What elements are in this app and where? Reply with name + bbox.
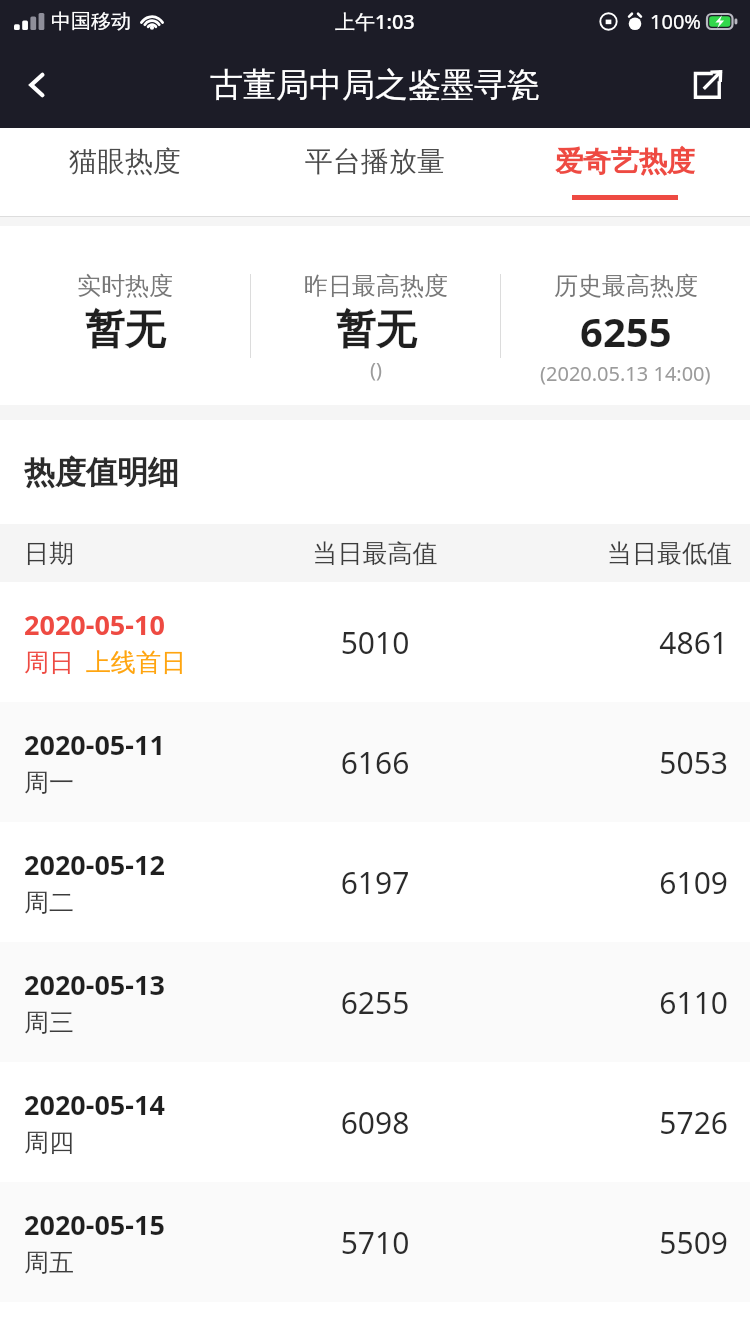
staticText: 平台播放量 (305, 144, 445, 179)
staticText: 当日最高值 (250, 538, 500, 569)
staticText: 2020-05-15 (24, 1206, 165, 1243)
staticText: 周五 (24, 1247, 74, 1278)
staticText: 6109 (500, 862, 728, 903)
button[interactable]: 爱奇艺热度 (500, 128, 750, 216)
staticText: 日期 (24, 538, 250, 569)
staticText: 古董局中局之鉴墨寻瓷 (210, 64, 540, 106)
staticText: 上线首日 (86, 647, 186, 678)
staticText: 5010 (250, 622, 500, 663)
staticText: 5710 (250, 1222, 500, 1263)
staticText: 6255 (250, 982, 500, 1023)
staticText: 周二 (24, 887, 74, 918)
staticText: 5053 (500, 742, 728, 783)
staticText: 暂无 (336, 304, 416, 354)
staticText: 爱奇艺热度 (555, 144, 695, 179)
button[interactable]: Back (0, 42, 74, 128)
staticText: 6166 (250, 742, 500, 783)
staticText: 5509 (500, 1222, 728, 1263)
staticText: (2020.05.13 14:00) (540, 360, 711, 387)
staticText: 2020-05-13 (24, 966, 165, 1003)
staticText: 上午1:03 (335, 8, 415, 35)
button[interactable]: 猫眼热度 (0, 128, 250, 216)
button[interactable]: Share (664, 42, 750, 128)
button[interactable]: 2020-05-13 (0, 942, 750, 1062)
staticText: 猫眼热度 (69, 144, 181, 179)
button[interactable]: 2020-05-10 (0, 582, 750, 702)
staticText: 周四 (24, 1127, 74, 1158)
staticText: 5726 (500, 1102, 728, 1143)
button[interactable]: 2020-05-12 (0, 822, 750, 942)
staticText: 4861 (500, 622, 728, 663)
staticText: 当日最低值 (500, 538, 732, 569)
staticText: 中国移动 (51, 9, 131, 34)
staticText: 周三 (24, 1007, 74, 1038)
staticText: 2020-05-12 (24, 846, 165, 883)
staticText: 6098 (250, 1102, 500, 1143)
button[interactable]: 2020-05-14 (0, 1062, 750, 1182)
staticText: 昨日最高热度 (304, 271, 448, 301)
staticText: 暂无 (85, 304, 165, 354)
button[interactable]: 平台播放量 (250, 128, 500, 216)
staticText: () (370, 356, 382, 383)
staticText: 6110 (500, 982, 728, 1023)
staticText: 周一 (24, 767, 74, 798)
staticText: 100% (650, 8, 701, 35)
staticText: 2020-05-10 (24, 606, 165, 643)
staticText: 实时热度 (77, 271, 173, 301)
staticText: 2020-05-11 (24, 726, 165, 763)
staticText: 6255 (580, 304, 672, 358)
button[interactable]: 2020-05-15 (0, 1182, 750, 1302)
staticText: 热度值明细 (24, 453, 179, 492)
staticText: 6197 (250, 862, 500, 903)
staticText: 周日 (24, 647, 74, 678)
button[interactable]: 2020-05-11 (0, 702, 750, 822)
staticText: 2020-05-14 (24, 1086, 165, 1123)
staticText: 历史最高热度 (554, 271, 698, 301)
